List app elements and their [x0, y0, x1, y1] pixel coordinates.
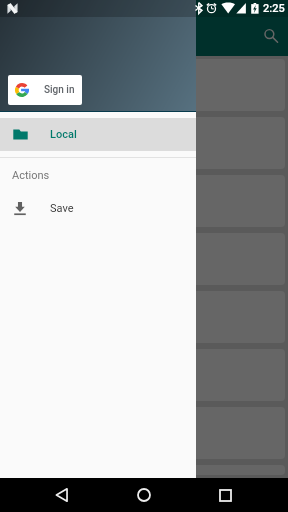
- staticText: Sign in: [44, 84, 75, 96]
- button[interactable]: [3, 233, 285, 285]
- button[interactable]: Search: [254, 19, 288, 53]
- button[interactable]: [3, 465, 285, 475]
- button[interactable]: Save: [0, 195, 196, 222]
- button[interactable]: [3, 117, 285, 169]
- button[interactable]: [3, 175, 285, 227]
- staticText: Local: [50, 128, 77, 141]
- staticText: Save: [50, 202, 74, 215]
- button[interactable]: Local: [0, 118, 196, 151]
- button[interactable]: Back: [46, 487, 78, 503]
- button[interactable]: [3, 291, 285, 343]
- button[interactable]: [3, 407, 285, 459]
- button[interactable]: [3, 349, 285, 401]
- button[interactable]: Recents: [209, 487, 241, 503]
- button[interactable]: Sign in: [8, 75, 82, 105]
- staticText: 2:25: [263, 2, 285, 15]
- staticText: Actions: [12, 169, 50, 182]
- button[interactable]: Home: [128, 487, 160, 503]
- button[interactable]: [3, 59, 285, 111]
